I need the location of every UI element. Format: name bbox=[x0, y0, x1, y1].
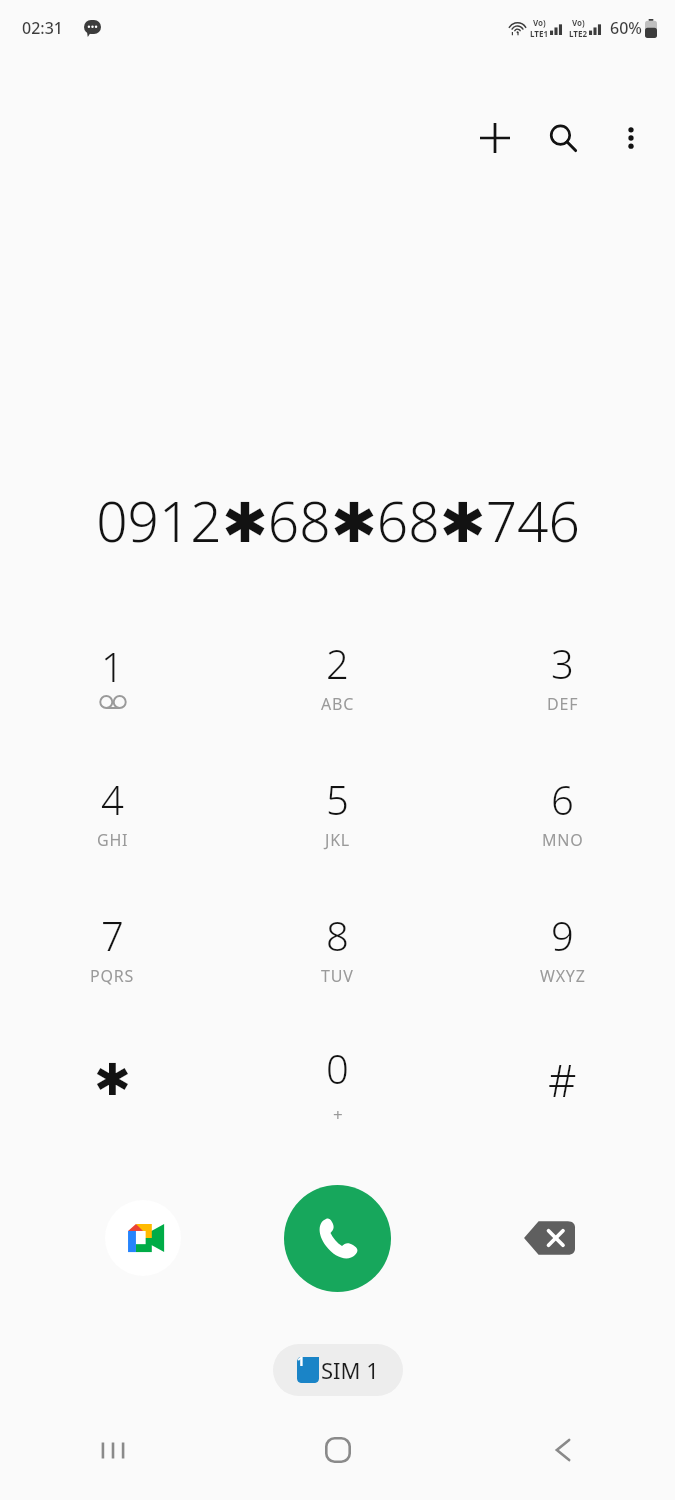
staticText: PQRS bbox=[90, 965, 135, 987]
staticText: 2 bbox=[326, 636, 349, 690]
staticText: 1 bbox=[297, 1352, 305, 1370]
staticText: 60% bbox=[610, 17, 642, 39]
staticText: 8 bbox=[326, 908, 349, 962]
button[interactable]: Recents bbox=[0, 1418, 225, 1482]
button[interactable]: 8 bbox=[225, 876, 450, 1012]
button[interactable]: Video call bbox=[105, 1200, 181, 1276]
button[interactable]: Search bbox=[529, 104, 597, 172]
staticText: LTE2 bbox=[569, 28, 587, 39]
staticText: LTE1 bbox=[530, 28, 548, 39]
button[interactable]: 6 bbox=[450, 740, 675, 876]
staticText: Vo) bbox=[533, 17, 546, 28]
button[interactable]: 7 bbox=[0, 876, 225, 1012]
button[interactable]: 1 bbox=[0, 604, 225, 740]
button[interactable]: Call bbox=[284, 1185, 391, 1292]
staticText: ✱ bbox=[94, 1054, 131, 1105]
button[interactable]: Home bbox=[225, 1418, 450, 1482]
staticText: 02:31 bbox=[22, 17, 63, 39]
staticText: Vo) bbox=[572, 17, 585, 28]
staticText: + bbox=[333, 1103, 343, 1126]
button[interactable]: SIM 1 bbox=[273, 1344, 403, 1396]
button[interactable]: 5 bbox=[225, 740, 450, 876]
staticText: 6 bbox=[551, 772, 574, 826]
staticText: 5 bbox=[326, 772, 349, 826]
staticText: 3 bbox=[551, 636, 574, 690]
staticText: SIM 1 bbox=[321, 1355, 379, 1385]
button[interactable]: ✱ bbox=[0, 1012, 225, 1148]
staticText: JKL bbox=[325, 829, 351, 851]
staticText: GHI bbox=[97, 829, 129, 851]
staticText: ABC bbox=[321, 693, 355, 715]
button[interactable]: 0 bbox=[225, 1012, 450, 1148]
button[interactable]: More options bbox=[597, 104, 665, 172]
staticText: DEF bbox=[547, 693, 579, 715]
staticText: 1 bbox=[101, 639, 124, 693]
button[interactable]: 9 bbox=[450, 876, 675, 1012]
staticText: 4 bbox=[101, 772, 124, 826]
button[interactable]: # bbox=[450, 1012, 675, 1148]
button[interactable]: 4 bbox=[0, 740, 225, 876]
staticText: 0912✱68✱68✱746 bbox=[96, 483, 580, 558]
staticText: TUV bbox=[321, 965, 354, 987]
staticText: 9 bbox=[551, 908, 574, 962]
button[interactable]: 3 bbox=[450, 604, 675, 740]
staticText: 7 bbox=[101, 908, 124, 962]
button[interactable]: Add contact bbox=[461, 104, 529, 172]
button[interactable]: Back bbox=[450, 1418, 675, 1482]
button[interactable]: Backspace bbox=[513, 1202, 585, 1274]
staticText: 0 bbox=[326, 1041, 349, 1095]
button[interactable]: 2 bbox=[225, 604, 450, 740]
staticText: MNO bbox=[542, 829, 584, 851]
staticText: WXYZ bbox=[540, 965, 586, 987]
staticText: # bbox=[548, 1050, 577, 1110]
